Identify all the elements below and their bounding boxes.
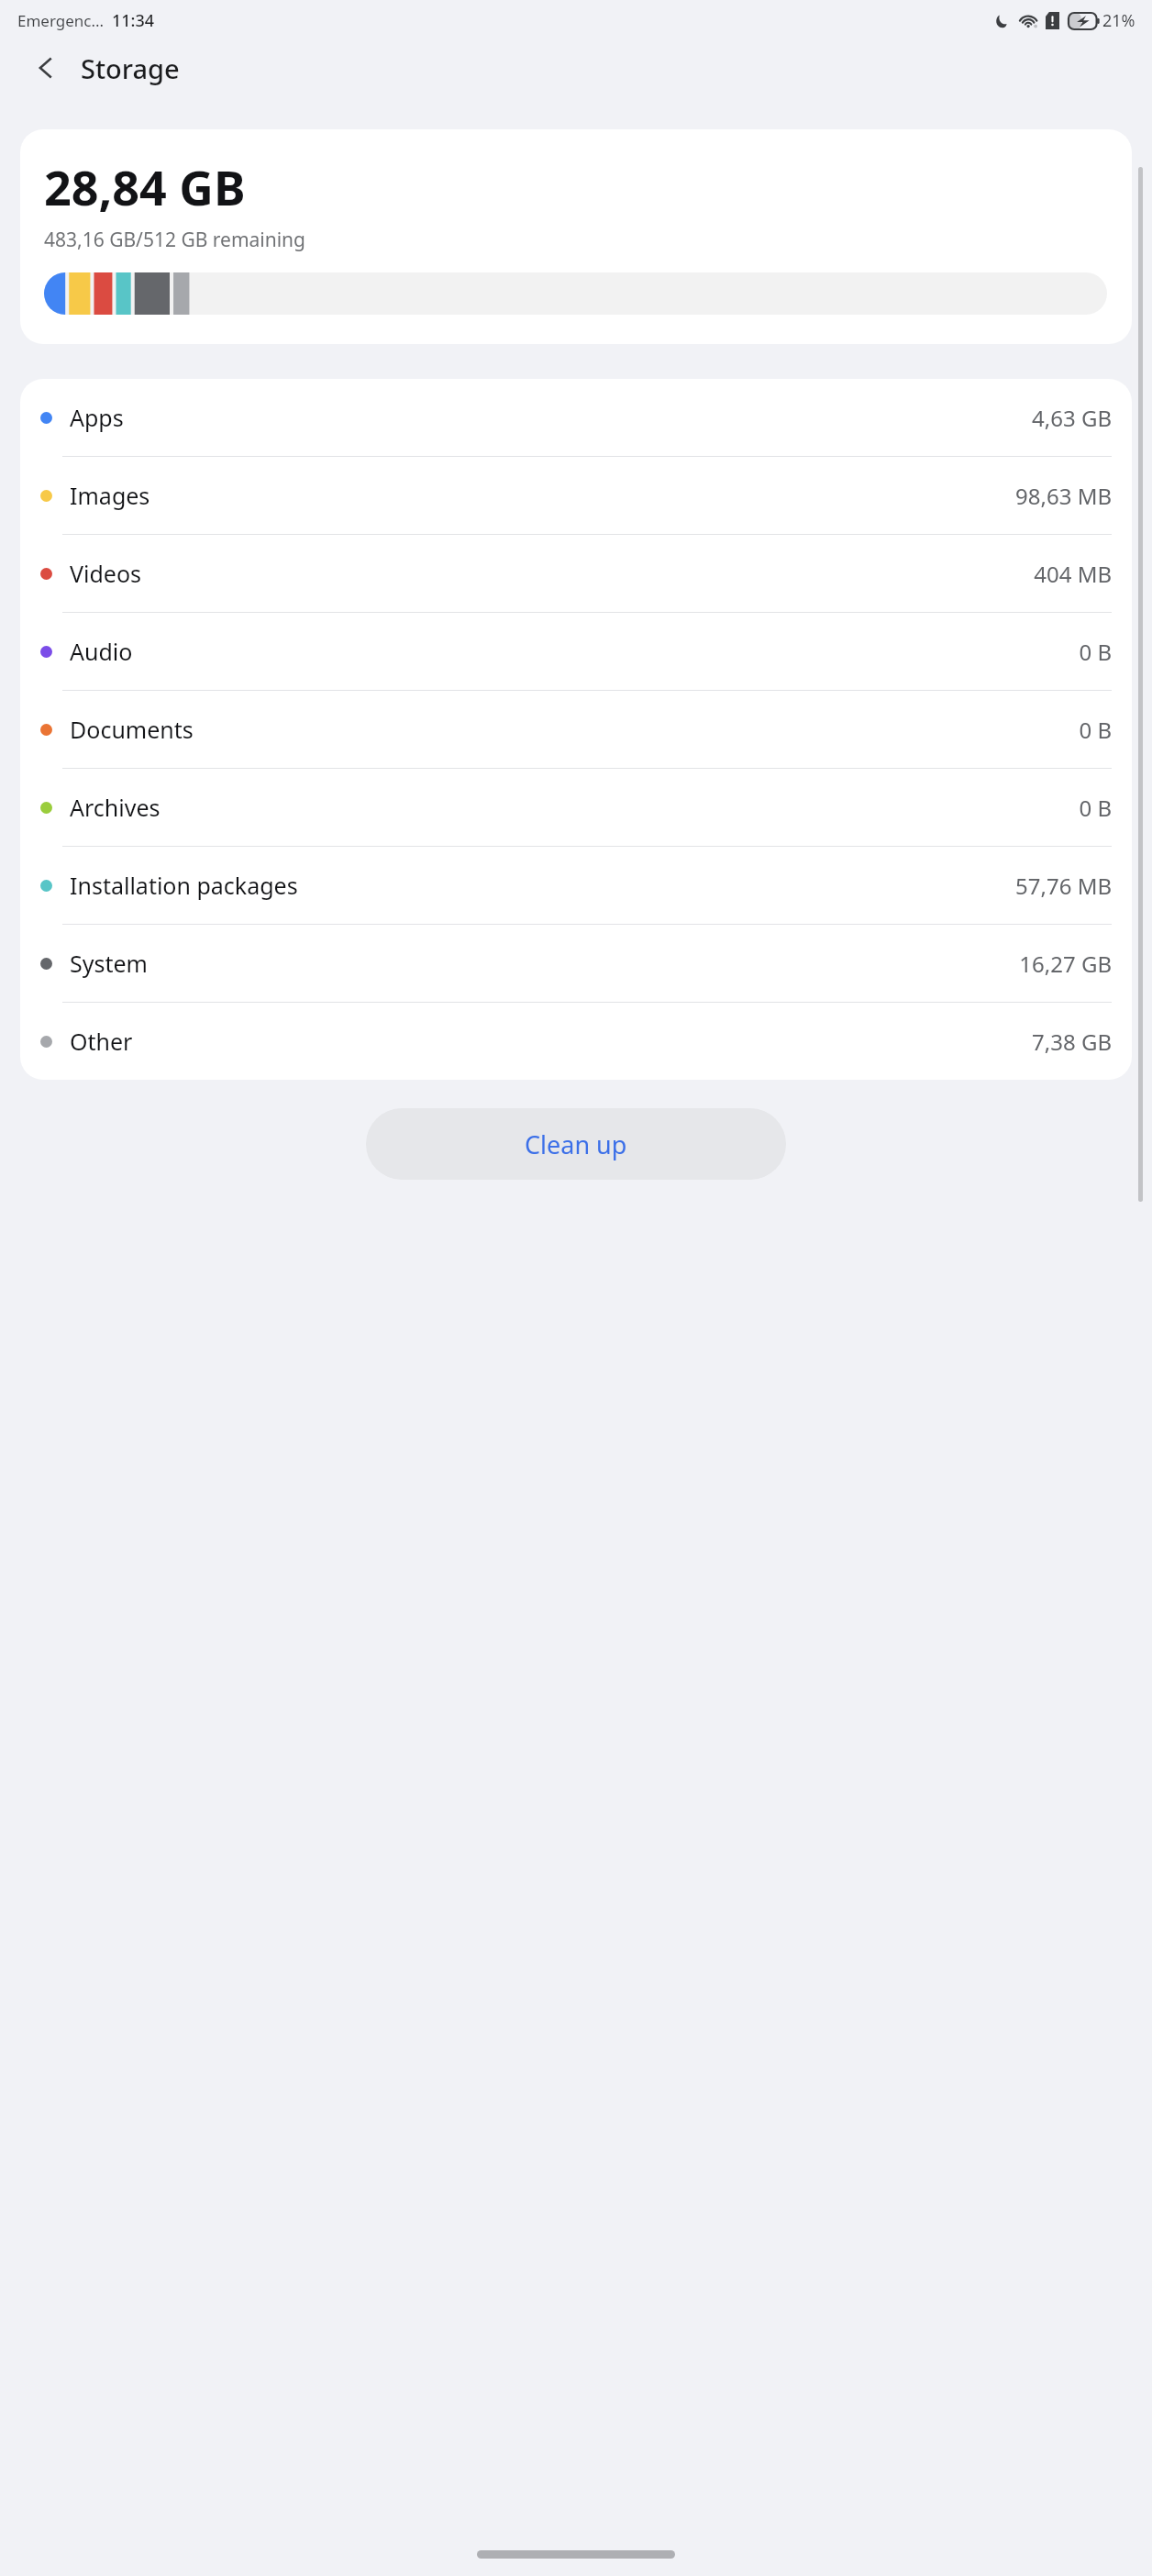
- staticText: Installation packages: [70, 870, 1015, 901]
- button[interactable]: Images: [20, 457, 1132, 534]
- staticText: Videos: [70, 558, 1034, 589]
- staticText: Other: [70, 1026, 1032, 1057]
- staticText: 21%: [1102, 9, 1135, 32]
- staticText: 483,16 GB/512 GB remaining: [44, 227, 306, 253]
- staticText: 57,76 MB: [1015, 871, 1112, 901]
- staticText: Emergenc...: [17, 10, 105, 31]
- staticText: Archives: [70, 792, 1079, 823]
- staticText: 98,63 MB: [1015, 481, 1112, 511]
- staticText: 0 B: [1079, 793, 1112, 823]
- button[interactable]: Documents: [20, 691, 1132, 768]
- staticText: 11:34: [112, 9, 155, 32]
- button[interactable]: Videos: [20, 535, 1132, 612]
- button[interactable]: Audio: [20, 613, 1132, 690]
- staticText: Apps: [70, 402, 1032, 433]
- button[interactable]: Other: [20, 1003, 1132, 1080]
- button[interactable]: Archives: [20, 769, 1132, 846]
- staticText: Images: [70, 480, 1015, 511]
- staticText: 0 B: [1079, 637, 1112, 667]
- staticText: Documents: [70, 714, 1079, 745]
- staticText: 16,27 GB: [1019, 949, 1112, 979]
- button[interactable]: Back: [24, 46, 68, 90]
- staticText: 0 B: [1079, 715, 1112, 745]
- staticText: Clean up: [525, 1127, 627, 1161]
- staticText: 4,63 GB: [1032, 403, 1112, 433]
- staticText: 28,84 GB: [44, 154, 246, 219]
- button[interactable]: Clean up: [366, 1108, 786, 1180]
- staticText: Storage: [81, 50, 180, 86]
- button[interactable]: System: [20, 925, 1132, 1002]
- button[interactable]: 28,84 GB: [20, 129, 1132, 344]
- staticText: System: [70, 948, 1019, 979]
- staticText: 404 MB: [1034, 559, 1112, 589]
- staticText: Audio: [70, 636, 1079, 667]
- staticText: 7,38 GB: [1032, 1027, 1112, 1057]
- button[interactable]: Installation packages: [20, 847, 1132, 924]
- button[interactable]: Apps: [20, 379, 1132, 456]
